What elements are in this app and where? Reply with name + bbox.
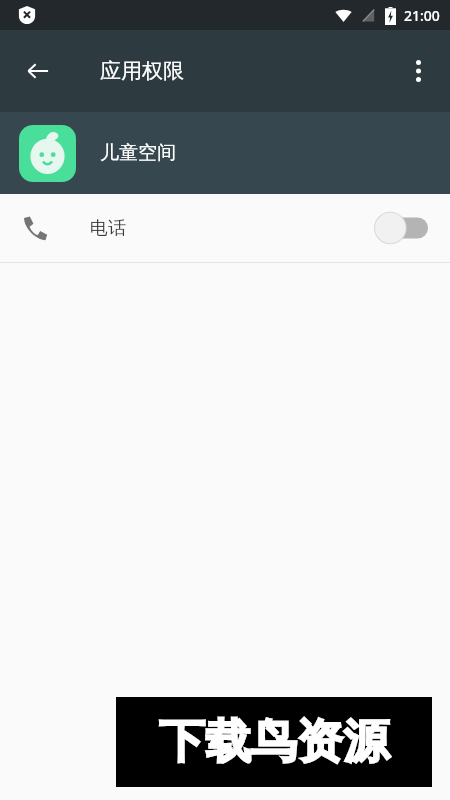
staticText: 电话 <box>90 217 126 240</box>
button[interactable]: Toggle phone permission <box>374 211 428 245</box>
staticText: 儿童空间 <box>100 141 176 165</box>
staticText: 21:00 <box>404 6 440 25</box>
button[interactable]: Back <box>14 47 62 95</box>
staticText: 下载鸟资源 <box>159 713 389 771</box>
button[interactable]: 儿童空间 <box>0 112 450 194</box>
button[interactable]: 电话 <box>0 194 450 262</box>
button[interactable]: More options <box>394 47 442 95</box>
staticText: 应用权限 <box>100 58 184 84</box>
